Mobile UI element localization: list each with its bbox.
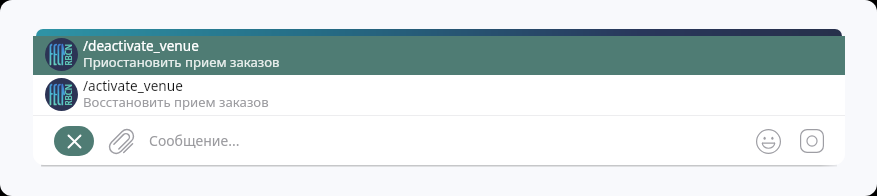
button[interactable]: Camera [796, 125, 828, 157]
staticText: Сообщение... [149, 131, 240, 150]
button[interactable]: RBCN [33, 36, 845, 75]
button[interactable]: Emoji [752, 125, 784, 157]
staticText: Приостановить прием заказов [83, 53, 280, 71]
button[interactable]: RBCN [33, 75, 845, 115]
button[interactable]: Attach file [104, 124, 138, 158]
staticText: RBCN [62, 83, 73, 105]
staticText: /deactivate_venue [83, 36, 199, 55]
staticText: /activate_venue [83, 76, 183, 95]
button[interactable]: Close [54, 126, 94, 156]
staticText: Восстановить прием заказов [83, 93, 269, 111]
staticText: RBCN [62, 43, 73, 65]
